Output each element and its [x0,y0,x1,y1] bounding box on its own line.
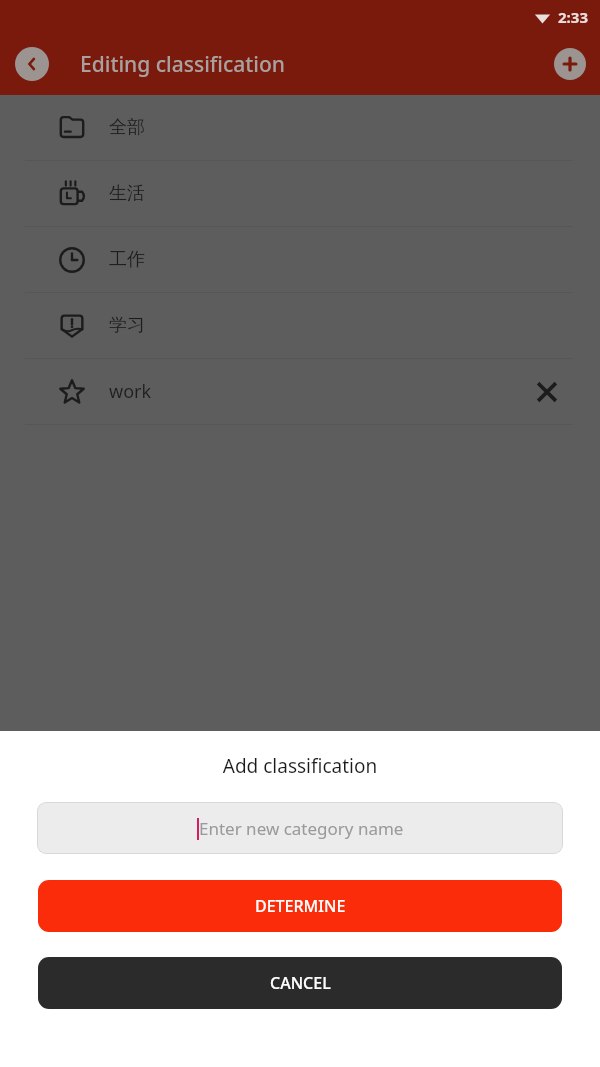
button[interactable]: work [0,359,600,424]
staticText: work [109,379,152,404]
staticText: DETERMINE [255,895,346,917]
button[interactable]: 生活 [0,161,600,226]
staticText: Enter new category name [199,817,404,840]
button[interactable]: CANCEL [38,957,562,1009]
staticText: Editing classification [80,50,286,79]
staticText: 学习 [109,314,145,337]
button[interactable]: 学习 [0,293,600,358]
staticText: CANCEL [270,972,331,994]
button[interactable]: 工作 [0,227,600,292]
button[interactable]: Back [15,47,49,81]
staticText: 工作 [109,248,145,271]
button[interactable]: DETERMINE [38,880,562,932]
button[interactable]: Delete category [532,377,562,407]
staticText: 2:33 [558,7,588,27]
button[interactable]: 全部 [0,95,600,160]
staticText: Add classification [0,753,600,779]
button[interactable]: Enter new category name [37,802,563,854]
staticText: 全部 [109,116,145,139]
button[interactable]: Add classification [554,48,586,80]
staticText: 生活 [109,182,145,205]
